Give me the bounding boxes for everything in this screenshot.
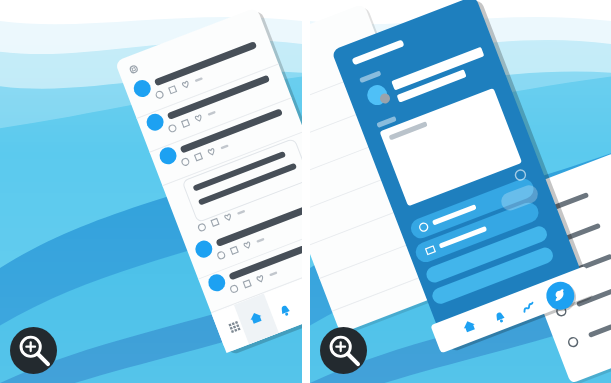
button[interactable]: Zoom in first screenshot <box>10 327 57 374</box>
button[interactable]: Zoom in second screenshot <box>320 327 367 374</box>
